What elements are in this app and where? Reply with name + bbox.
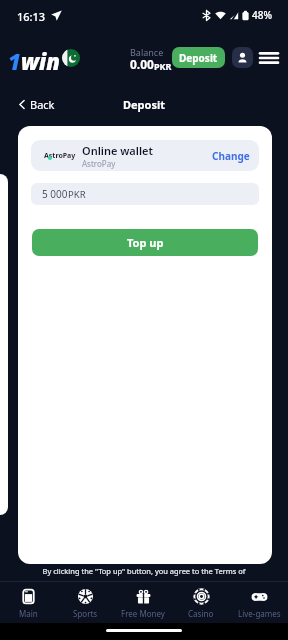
staticText: PKR — [68, 188, 86, 201]
staticText: Main — [19, 608, 38, 619]
staticText: 16:13 — [17, 9, 46, 24]
button[interactable]: Back — [0, 97, 65, 112]
button[interactable]: Profile — [232, 47, 253, 68]
button[interactable]: Menu — [258, 47, 280, 68]
button[interactable]: 1 — [8, 46, 80, 70]
staticText: Back — [30, 97, 55, 112]
button[interactable]: Main — [0, 586, 57, 619]
staticText: win — [21, 46, 60, 70]
staticText: AstroPay — [44, 151, 76, 161]
staticText: Deposit — [123, 97, 166, 112]
staticText: 5 000 — [42, 187, 68, 201]
button[interactable]: Deposit — [172, 47, 225, 68]
staticText: Free Money — [121, 608, 165, 619]
staticText: Top up — [127, 235, 164, 250]
staticText: PKR — [154, 60, 172, 72]
button[interactable]: Live-games — [230, 586, 288, 619]
button[interactable]: 5 000 — [31, 183, 259, 205]
staticText: 0.00 — [130, 56, 154, 72]
button[interactable]: Casino — [172, 586, 230, 619]
staticText: Online wallet — [82, 143, 153, 158]
staticText: Live-games — [238, 608, 281, 619]
staticText: Balance — [130, 46, 164, 58]
staticText: 48% — [252, 8, 272, 22]
button[interactable]: AstroPay — [31, 140, 259, 171]
staticText: Change — [212, 149, 250, 163]
staticText: Deposit — [179, 51, 218, 65]
staticText: Casino — [188, 608, 214, 619]
staticText: AstroPay — [82, 158, 116, 169]
staticText: 1 — [8, 46, 21, 70]
button[interactable]: Sports — [57, 586, 114, 619]
button[interactable]: Top up — [32, 229, 258, 256]
staticText: Sports — [73, 608, 98, 619]
staticText: By clicking the "Top up" button, you agr… — [0, 566, 288, 576]
button[interactable]: Free Money — [114, 586, 172, 619]
